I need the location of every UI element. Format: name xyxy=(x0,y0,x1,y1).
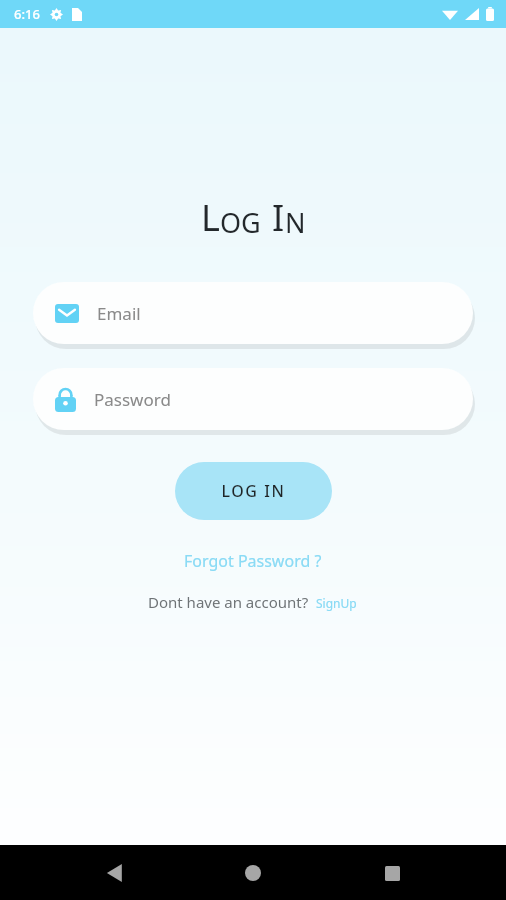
staticText: LOG IN xyxy=(221,480,286,502)
button[interactable]: Email xyxy=(33,282,473,344)
other: Email xyxy=(55,304,79,323)
button[interactable]: LOG IN xyxy=(175,462,332,520)
button[interactable]: Password xyxy=(33,368,473,430)
button[interactable]: Home xyxy=(229,849,277,897)
staticText: SignUp xyxy=(316,595,357,611)
staticText: 6:16 xyxy=(14,5,40,23)
button[interactable]: Back xyxy=(91,849,139,897)
button[interactable]: Recent apps xyxy=(368,849,416,897)
staticText: Password xyxy=(94,388,171,411)
staticText: Forgot Password ? xyxy=(184,550,322,572)
staticText: L xyxy=(201,193,220,242)
staticText: N xyxy=(285,204,306,241)
button[interactable]: Forgot Password ? xyxy=(176,546,330,576)
staticText: Dont have an account? xyxy=(148,592,309,612)
other: Password xyxy=(55,387,76,412)
staticText: OG xyxy=(220,204,261,241)
button[interactable]: SignUp xyxy=(314,594,359,612)
staticText: Email xyxy=(97,302,141,325)
staticText: I xyxy=(272,193,285,242)
